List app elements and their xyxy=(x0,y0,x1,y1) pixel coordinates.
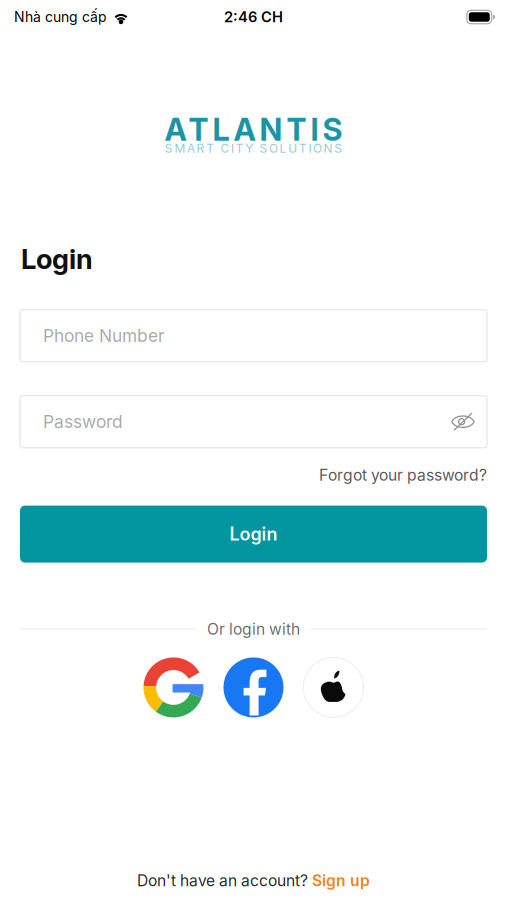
staticText: Login xyxy=(21,243,93,276)
staticText: Nhà cung cấp xyxy=(14,8,107,25)
staticText: Don't have an account? xyxy=(137,871,308,890)
staticText: Forgot your password? xyxy=(319,466,487,485)
staticText: Password xyxy=(43,411,123,432)
button[interactable]: Password xyxy=(20,396,487,448)
button[interactable]: Phone Number xyxy=(20,310,487,362)
staticText: 2:46 CH xyxy=(224,8,283,26)
staticText: Phone Number xyxy=(43,325,165,346)
staticText: Or login with xyxy=(207,620,300,638)
button[interactable]: Login xyxy=(20,506,487,563)
staticText: SMART CITY SOLUTIONS xyxy=(165,141,342,156)
button[interactable]: Forgot your password? xyxy=(319,466,487,485)
button[interactable]: Sign in with Google xyxy=(143,657,203,717)
button[interactable]: Don't have an account? xyxy=(137,871,370,890)
button[interactable]: Sign in with Apple xyxy=(303,657,363,717)
button[interactable]: Show password xyxy=(451,411,475,433)
staticText: Sign up xyxy=(312,871,370,890)
staticText: ATLANTIS xyxy=(164,111,342,148)
staticText: Login xyxy=(229,523,277,545)
button[interactable]: Sign in with Facebook xyxy=(223,657,283,717)
